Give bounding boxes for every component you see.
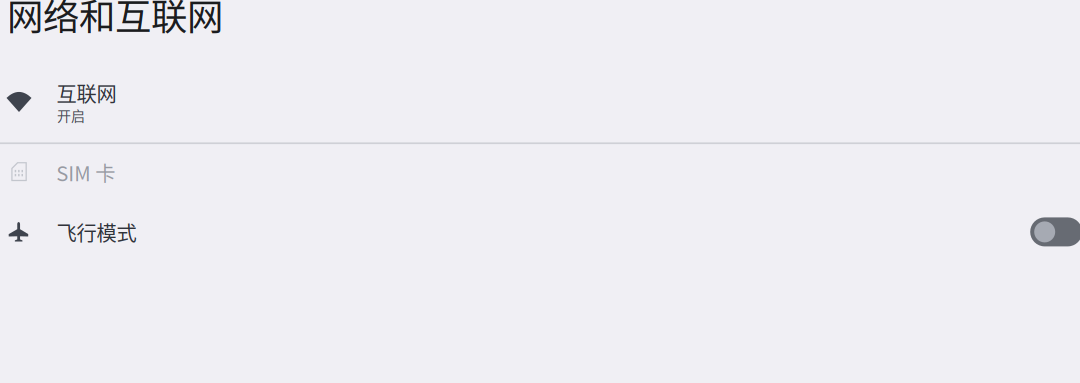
staticText: 网络和互联网 xyxy=(7,0,223,41)
staticText: 开启 xyxy=(57,105,85,125)
staticText: SIM 卡 xyxy=(56,158,115,187)
staticText: 飞行模式 xyxy=(56,217,136,247)
button[interactable]: SIM 卡 xyxy=(0,144,1080,202)
button[interactable]: 飞行模式 xyxy=(0,203,1080,263)
staticText: 互联网 xyxy=(57,78,117,108)
button[interactable]: 飞行模式 xyxy=(1030,217,1080,246)
button[interactable]: 互联网 xyxy=(0,60,1080,120)
